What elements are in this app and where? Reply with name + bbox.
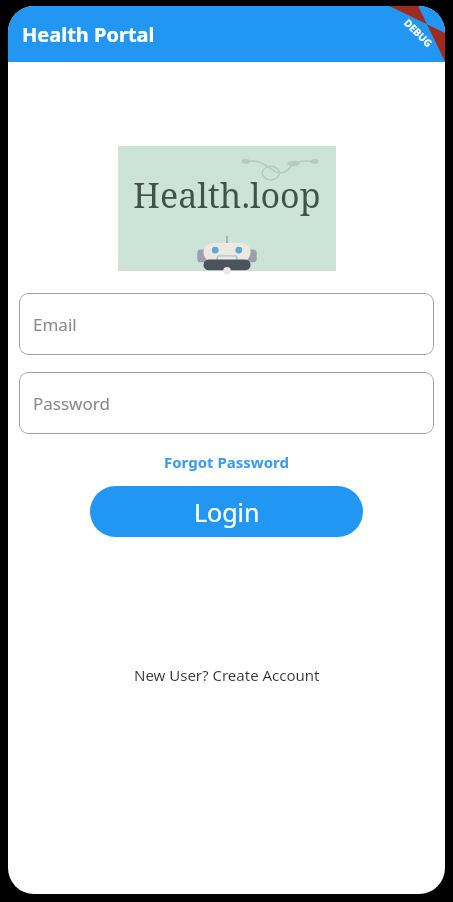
staticText: Health Portal bbox=[22, 21, 155, 48]
staticText: Login bbox=[194, 495, 260, 529]
button[interactable]: New User? Create Account bbox=[128, 662, 326, 688]
staticText: New User? Create Account bbox=[134, 665, 320, 685]
button[interactable]: Forgot Password bbox=[158, 450, 295, 474]
staticText: Password bbox=[33, 392, 110, 415]
button[interactable]: Password bbox=[19, 372, 434, 434]
staticText: Email bbox=[33, 313, 77, 336]
staticText: DEBUG bbox=[401, 16, 436, 50]
staticText: Forgot Password bbox=[164, 452, 289, 472]
staticText: Health.loop bbox=[133, 172, 321, 218]
button[interactable]: Email bbox=[19, 293, 434, 355]
button[interactable]: Login bbox=[90, 486, 363, 537]
